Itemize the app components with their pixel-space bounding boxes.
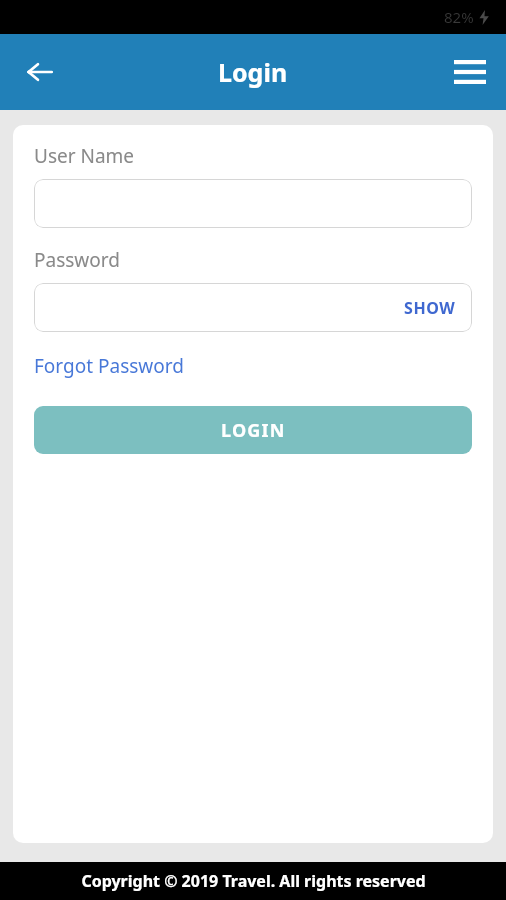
button[interactable]: Back xyxy=(16,48,64,96)
button[interactable]: LOGIN xyxy=(34,406,472,454)
staticText: Forgot Password xyxy=(34,353,184,379)
staticText: Password xyxy=(34,247,120,273)
staticText: LOGIN xyxy=(221,418,286,443)
button[interactable]: Menu xyxy=(446,48,494,96)
button[interactable]: Forgot Password xyxy=(34,353,184,379)
staticText: SHOW xyxy=(404,297,456,319)
staticText: 82% xyxy=(444,7,474,27)
staticText: Copyright © 2019 Travel. All rights rese… xyxy=(81,870,426,892)
staticText: User Name xyxy=(34,143,135,169)
staticText: Login xyxy=(218,55,288,89)
button[interactable]: SHOW xyxy=(34,283,472,332)
button[interactable] xyxy=(34,179,472,228)
button[interactable]: SHOW xyxy=(388,289,472,327)
